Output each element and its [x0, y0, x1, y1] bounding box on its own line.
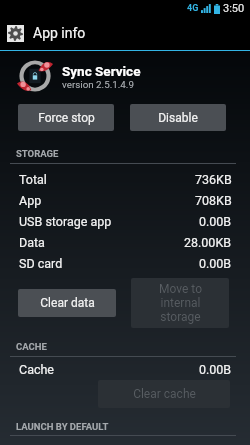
button[interactable]: Clear cache [98, 380, 230, 408]
button[interactable]: Settings [0, 16, 250, 50]
staticText: Clear cache [133, 387, 196, 401]
staticText: 0.00B [199, 256, 232, 271]
staticText: LAUNCH BY DEFAULT [16, 421, 109, 432]
staticText: version 2.5.1.4.9 [62, 79, 134, 90]
staticText: 736KB [195, 172, 232, 187]
staticText: Move to internal storage [159, 282, 202, 324]
staticText: 708KB [195, 193, 232, 208]
button[interactable]: Clear data [18, 289, 116, 317]
staticText: 0.00B [199, 362, 232, 377]
staticText: Sync Service [62, 63, 141, 79]
staticText: Total [19, 172, 47, 187]
staticText: Clear data [40, 296, 95, 310]
staticText: Cache [19, 362, 54, 377]
staticText: App [19, 193, 42, 208]
staticText: Disable [158, 111, 198, 125]
other: Settings [7, 25, 24, 42]
staticText: 3:50 [223, 2, 245, 15]
staticText: Force stop [38, 111, 95, 125]
button[interactable]: Move to internal storage [131, 278, 229, 328]
staticText: 0.00B [199, 214, 232, 229]
staticText: CACHE [16, 341, 47, 352]
staticText: STORAGE [16, 148, 59, 159]
staticText: 4G [187, 3, 199, 14]
staticText: USB storage app [19, 214, 112, 229]
staticText: App info [33, 25, 86, 41]
staticText: Data [19, 235, 45, 250]
button[interactable]: Force stop [18, 104, 114, 131]
staticText: 28.00KB [184, 235, 232, 250]
staticText: SD card [19, 256, 63, 271]
button[interactable]: Disable [130, 104, 226, 131]
